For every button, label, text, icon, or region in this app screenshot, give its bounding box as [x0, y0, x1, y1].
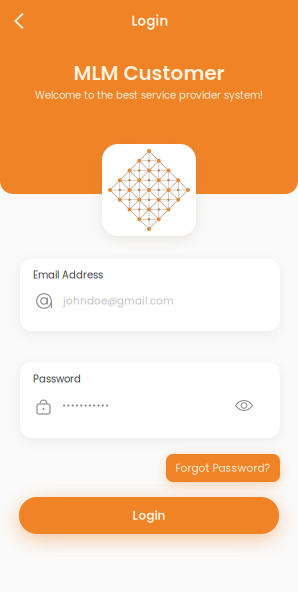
staticText: MLM Customer: [73, 59, 224, 87]
staticText: Welcome to the best service provider sys…: [35, 88, 263, 102]
staticText: Email Address: [33, 268, 103, 282]
staticText: Login: [131, 12, 168, 30]
staticText: Password: [33, 372, 81, 386]
button[interactable]: Back: [0, 7, 44, 35]
staticText: johndoe@gmail.com: [63, 294, 174, 308]
button[interactable]: Show password: [235, 399, 253, 411]
button[interactable]: Forgot Password?: [166, 454, 280, 482]
button[interactable]: Login: [19, 497, 279, 534]
staticText: Login: [132, 507, 165, 524]
staticText: Forgot Password?: [175, 460, 270, 475]
